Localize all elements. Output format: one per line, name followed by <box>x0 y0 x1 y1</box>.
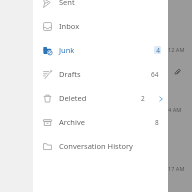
staticText: Archive <box>59 117 155 127</box>
staticText: Inbox <box>59 21 166 31</box>
staticText: Deleted <box>59 93 141 103</box>
button[interactable]: Deleted <box>33 86 168 110</box>
staticText: 4 AM <box>168 106 182 114</box>
staticText: 17 AM <box>168 165 185 173</box>
staticText: Drafts <box>59 69 151 79</box>
button[interactable]: Junk <box>33 38 168 62</box>
staticText: 64 <box>151 70 159 79</box>
staticText: Junk <box>59 45 154 55</box>
staticText: 4 <box>156 46 160 54</box>
button[interactable]: Conversation History <box>33 134 168 158</box>
staticText: 8 <box>155 118 159 127</box>
staticText: 12 AM <box>168 46 185 54</box>
button[interactable]: Sent <box>33 0 168 14</box>
staticText: Conversation History <box>59 141 166 151</box>
button[interactable]: Expand <box>156 94 165 103</box>
button[interactable]: Inbox <box>33 14 168 38</box>
button[interactable]: Archive <box>33 110 168 134</box>
button[interactable]: Drafts <box>33 62 168 86</box>
staticText: 2 <box>141 94 145 103</box>
staticText: Sent <box>59 0 166 7</box>
